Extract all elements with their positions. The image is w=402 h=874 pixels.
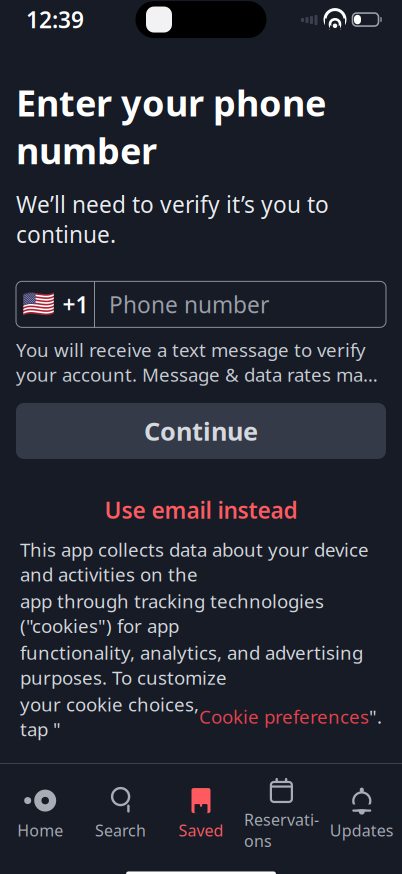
button[interactable]: Home [0,786,80,843]
staticText: You will receive a text message to verif… [16,337,386,387]
staticText: Use email instead [104,495,297,525]
staticText: Updates [330,820,394,841]
staticText: ". [369,704,382,729]
staticText: functionality, analytics, and advertisin… [20,640,363,690]
button[interactable]: Cookie preferences [199,704,369,729]
button[interactable]: Updates [322,786,402,843]
staticText: This app collects data about your device… [20,537,369,587]
staticText: +1 [62,289,88,319]
button[interactable]: Continue [16,403,386,459]
staticText: 🇺🇸 [21,289,54,320]
button[interactable]: Use email instead [16,483,386,537]
staticText: Reservations [244,809,319,851]
button[interactable]: Reservations [241,775,322,853]
staticText: 12:39 [26,4,84,35]
button[interactable]: Search [80,786,161,843]
staticText: Enter your phone number [16,78,326,174]
staticText: Search [95,820,146,841]
staticText: Cookie preferences [199,704,369,729]
button[interactable]: Country code, United States, plus 1 [16,281,94,327]
staticText: Phone number [109,289,269,319]
staticText: app through tracking technologies ("cook… [20,589,324,638]
staticText: Home [17,820,63,841]
staticText: Continue [144,414,258,448]
button[interactable]: Saved [161,786,241,843]
staticText: your cookie choices, tap " [20,692,199,741]
staticText: Saved [178,820,223,841]
staticText: We’ll need to verify it’s you to continu… [16,189,329,249]
